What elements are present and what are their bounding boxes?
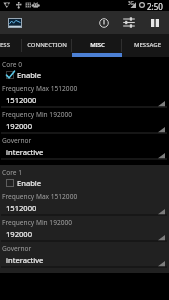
button[interactable]: Governor	[0, 245, 169, 271]
button[interactable]: Power	[93, 11, 115, 34]
staticText: Enable	[17, 178, 42, 188]
button[interactable]: Frequency Min 192000	[0, 219, 169, 245]
button[interactable]: PROCESS	[0, 34, 22, 57]
button[interactable]: Frequency Max 1512000	[0, 193, 169, 219]
button[interactable]: MISC	[72, 34, 122, 57]
staticText: MESSAGE	[134, 41, 161, 49]
staticText: PROCESS	[0, 41, 10, 49]
staticText: interactive	[6, 255, 44, 265]
button[interactable]: App icon	[3, 12, 26, 33]
button[interactable]: Frequency Min 192000	[0, 111, 169, 137]
button[interactable]: Enable	[0, 176, 169, 189]
staticText: Frequency Max 1512000	[2, 84, 78, 93]
button[interactable]: CONNECTION	[22, 34, 72, 57]
staticText: MISC	[90, 41, 105, 49]
staticText: 3G	[128, 0, 134, 6]
staticText: Frequency Max 1512000	[2, 192, 78, 201]
staticText: CONNECTION	[27, 41, 67, 49]
button[interactable]: Frequency Max 1512000	[0, 85, 169, 111]
button[interactable]: MESSAGE	[122, 34, 169, 57]
staticText: 192000	[6, 229, 33, 239]
staticText: Enable	[17, 70, 42, 80]
staticText: Frequency Min 192000	[2, 218, 72, 227]
staticText: 2:50	[147, 1, 163, 12]
staticText: Governor	[2, 136, 32, 145]
staticText: Frequency Min 192000	[2, 110, 72, 119]
staticText: Governor	[2, 244, 32, 253]
staticText: 192000	[6, 121, 33, 131]
button[interactable]: Governor	[0, 137, 169, 163]
staticText: 1512000	[6, 203, 37, 213]
staticText: interactive	[6, 147, 44, 157]
button[interactable]: Pause	[143, 11, 166, 34]
button[interactable]: Settings	[117, 11, 141, 34]
button[interactable]: Enable	[0, 68, 169, 81]
staticText: 1512000	[6, 95, 37, 105]
staticText: Core 0	[2, 60, 22, 69]
staticText: Core 1	[2, 168, 22, 177]
